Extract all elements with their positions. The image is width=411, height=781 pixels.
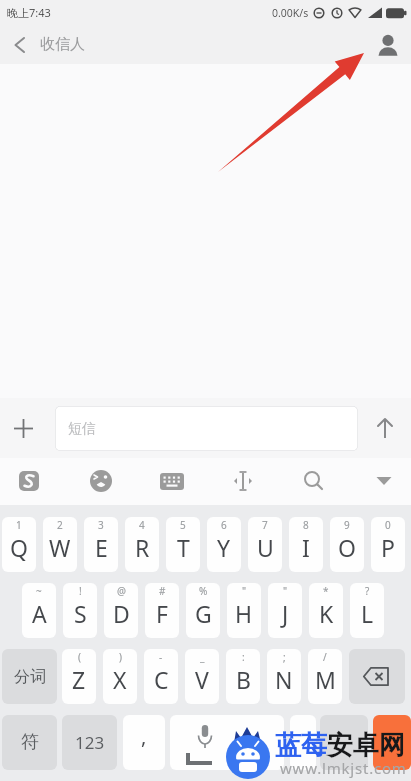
staticText: 6 xyxy=(221,518,227,532)
staticText: 收信人 xyxy=(40,35,85,54)
staticText: U xyxy=(257,532,274,563)
staticText: I xyxy=(302,532,310,563)
button[interactable] xyxy=(83,463,119,499)
staticText: Y xyxy=(217,532,231,563)
staticText: 短信 xyxy=(68,420,96,438)
button[interactable]: 短信 xyxy=(55,406,358,451)
button[interactable] xyxy=(371,414,399,442)
button[interactable] xyxy=(349,649,405,704)
button[interactable] xyxy=(225,463,261,499)
button[interactable]: , xyxy=(123,715,165,770)
button[interactable]: 5 xyxy=(166,517,200,572)
staticText: 0.00K/s xyxy=(272,6,309,20)
staticText: E xyxy=(95,532,108,563)
button[interactable]: : xyxy=(226,649,260,704)
staticText: 123 xyxy=(75,731,105,754)
staticText: Q xyxy=(10,532,28,563)
button[interactable] xyxy=(296,463,332,499)
button[interactable] xyxy=(366,463,402,499)
staticText: K xyxy=(319,598,334,629)
staticText: 5 xyxy=(180,518,186,532)
staticText: S xyxy=(74,598,87,629)
button[interactable] xyxy=(170,715,284,770)
button[interactable]: 3 xyxy=(84,517,118,572)
button[interactable] xyxy=(10,415,36,441)
staticText: * xyxy=(323,584,329,598)
staticText: T xyxy=(177,532,190,563)
button[interactable] xyxy=(6,32,32,58)
button[interactable]: @ xyxy=(104,583,138,638)
staticText: P xyxy=(381,532,395,563)
staticText: H xyxy=(235,598,253,629)
staticText: O xyxy=(338,532,356,563)
staticText: 4 xyxy=(139,518,145,532)
staticText: 晚上7:43 xyxy=(7,5,51,20)
staticText: R xyxy=(135,532,150,563)
button[interactable]: 0 xyxy=(371,517,405,572)
button[interactable]: ) xyxy=(103,649,137,704)
staticText: / xyxy=(323,650,327,664)
staticText: 蓝莓 xyxy=(275,729,327,762)
staticText: N xyxy=(275,664,293,695)
staticText: 分词 xyxy=(14,667,46,687)
staticText: 0 xyxy=(385,518,391,532)
button[interactable]: ? xyxy=(350,583,384,638)
button[interactable]: % xyxy=(186,583,220,638)
button[interactable]: 123 xyxy=(62,715,117,770)
button[interactable]: " xyxy=(268,583,302,638)
staticText: ) xyxy=(119,650,122,664)
button[interactable] xyxy=(154,463,190,499)
staticText: : xyxy=(242,650,245,664)
staticText: 3 xyxy=(98,518,104,532)
staticText: 2 xyxy=(57,518,63,532)
button[interactable]: ; xyxy=(267,649,301,704)
staticText: X xyxy=(113,664,127,695)
button[interactable]: / xyxy=(308,649,342,704)
staticText: 8 xyxy=(303,518,309,532)
staticText: ! xyxy=(79,584,82,598)
staticText: ? xyxy=(365,584,370,598)
button[interactable]: ~ xyxy=(22,583,56,638)
staticText: ~ xyxy=(36,584,42,598)
button[interactable] xyxy=(290,715,316,770)
button[interactable]: ! xyxy=(63,583,97,638)
button[interactable]: " xyxy=(227,583,261,638)
staticText: A xyxy=(32,598,47,629)
staticText: 9 xyxy=(344,518,350,532)
button[interactable]: _ xyxy=(185,649,219,704)
staticText: 符 xyxy=(21,731,39,754)
staticText: J xyxy=(282,598,289,629)
button[interactable]: 6 xyxy=(207,517,241,572)
button[interactable]: ( xyxy=(62,649,96,704)
button[interactable]: 1 xyxy=(2,517,36,572)
button[interactable]: 2 xyxy=(43,517,77,572)
button[interactable]: * xyxy=(309,583,343,638)
staticText: ( xyxy=(78,650,81,664)
staticText: 7 xyxy=(262,518,268,532)
button[interactable] xyxy=(373,715,411,770)
staticText: D xyxy=(113,598,130,629)
button[interactable]: # xyxy=(145,583,179,638)
button[interactable]: 8 xyxy=(289,517,323,572)
staticText: F xyxy=(156,598,168,629)
button[interactable]: 分词 xyxy=(2,649,57,704)
button[interactable]: 符 xyxy=(2,715,57,770)
button[interactable]: - xyxy=(144,649,178,704)
staticText: G xyxy=(195,598,212,629)
staticText: C xyxy=(154,664,169,695)
staticText: @ xyxy=(117,584,126,598)
button[interactable]: 9 xyxy=(330,517,364,572)
staticText: , xyxy=(141,723,147,750)
staticText: # xyxy=(159,584,166,598)
button[interactable] xyxy=(12,463,48,499)
staticText: 安卓网 xyxy=(327,729,405,762)
staticText: " xyxy=(283,584,288,598)
button[interactable] xyxy=(320,715,368,770)
staticText: % xyxy=(199,584,208,598)
staticText: W xyxy=(49,532,71,563)
button[interactable]: 7 xyxy=(248,517,282,572)
staticText: ; xyxy=(283,650,286,664)
button[interactable]: 4 xyxy=(125,517,159,572)
button[interactable] xyxy=(373,30,403,60)
staticText: 1 xyxy=(16,518,22,532)
